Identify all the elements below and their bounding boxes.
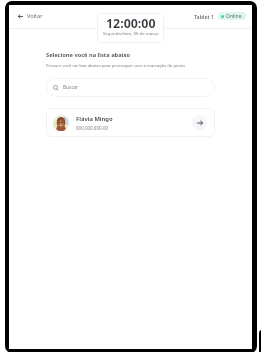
staticText: Segunda-feira, 06 de março (103, 30, 159, 36)
staticText: Buscar (63, 84, 79, 91)
button[interactable]: Voltar (17, 10, 44, 22)
staticText: Selecione você na lista abaixo (46, 51, 131, 59)
staticText: Flávia Mingo (76, 115, 113, 123)
staticText: Online (226, 13, 242, 20)
staticText: 000.000.000-00 (76, 125, 109, 131)
staticText: Procure você na lista abaixo para prosse… (46, 63, 186, 69)
button[interactable]: Buscar (46, 78, 215, 97)
staticText: Voltar (27, 12, 43, 20)
button[interactable]: Selecionar (192, 115, 207, 130)
staticText: Tablet 1 (194, 13, 215, 20)
staticText: 12:00:00 (106, 15, 156, 32)
button[interactable]: Flávia Mingo (46, 108, 215, 137)
button[interactable]: Online (218, 12, 246, 20)
